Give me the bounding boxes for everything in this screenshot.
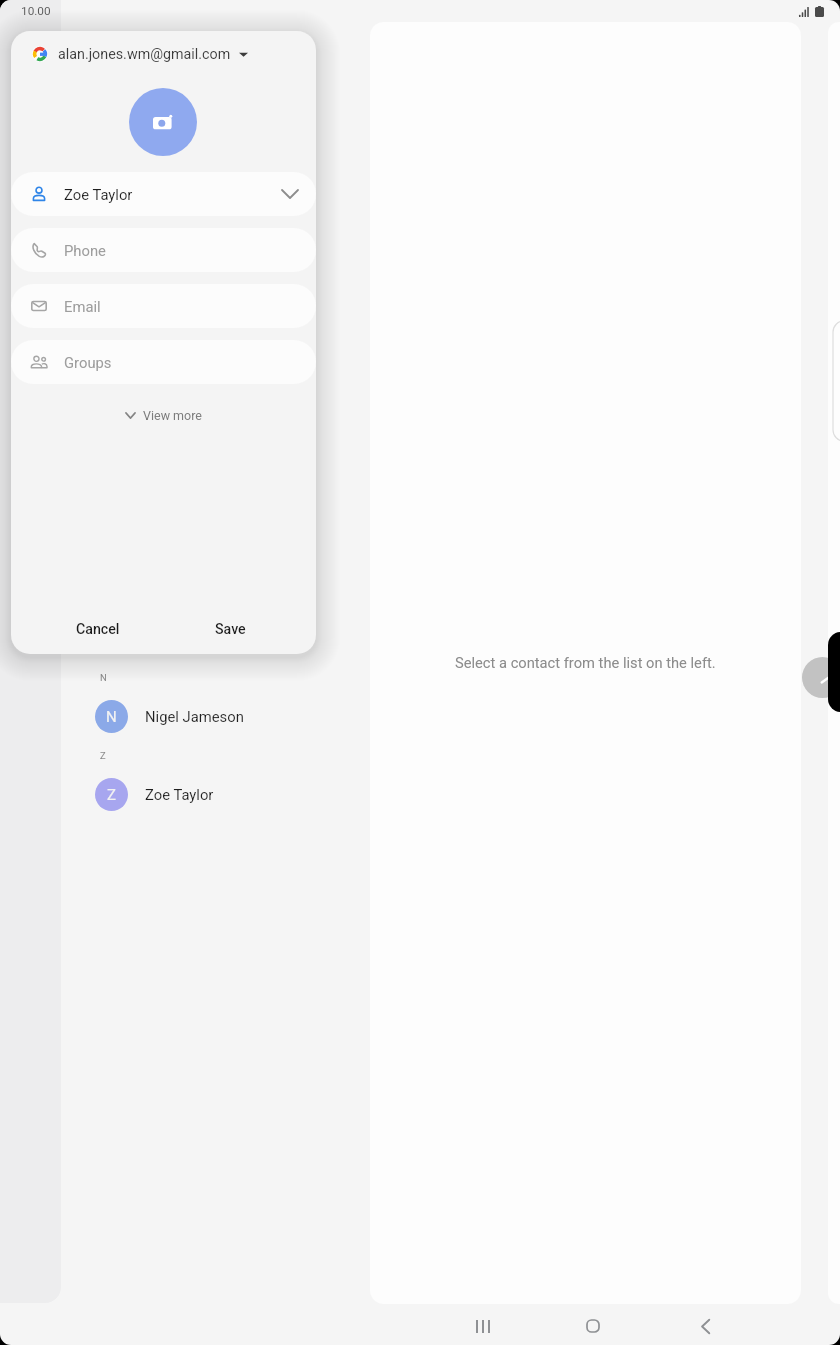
staticText: N <box>106 708 117 726</box>
button[interactable]: Back <box>683 1304 727 1345</box>
staticText: Zoe Taylor <box>145 786 214 803</box>
staticText: Cancel <box>76 621 120 638</box>
button[interactable]: Recents <box>461 1304 505 1345</box>
staticText: 10.00 <box>21 4 51 18</box>
button[interactable]: Home <box>571 1304 615 1345</box>
button[interactable]: Add photo <box>129 88 197 156</box>
button[interactable]: Groups <box>11 340 316 384</box>
staticText: alan.jones.wm@gmail.com <box>58 46 231 63</box>
staticText: Select a contact from the list on the le… <box>455 654 716 671</box>
staticText: Z <box>100 750 106 761</box>
button[interactable]: Phone <box>11 228 316 272</box>
button[interactable]: Save <box>188 611 272 647</box>
staticText: View more <box>143 408 202 423</box>
staticText: Nigel Jameson <box>145 708 244 725</box>
staticText: Email <box>64 298 101 315</box>
staticText: Phone <box>64 242 106 259</box>
button[interactable]: View more <box>11 399 316 431</box>
staticText: Z <box>107 786 116 804</box>
button[interactable]: Cancel <box>56 611 140 647</box>
button[interactable]: Z <box>61 768 370 820</box>
staticText: Save <box>215 621 246 638</box>
button[interactable]: Zoe Taylor <box>11 172 316 216</box>
button[interactable]: Open edge panel <box>802 657 840 698</box>
staticText: Groups <box>64 354 112 371</box>
staticText: Zoe Taylor <box>64 186 133 203</box>
button[interactable]: N <box>61 690 370 742</box>
staticText: N <box>100 672 107 683</box>
button[interactable]: alan.jones.wm@gmail.com <box>11 31 316 77</box>
button[interactable]: Email <box>11 284 316 328</box>
